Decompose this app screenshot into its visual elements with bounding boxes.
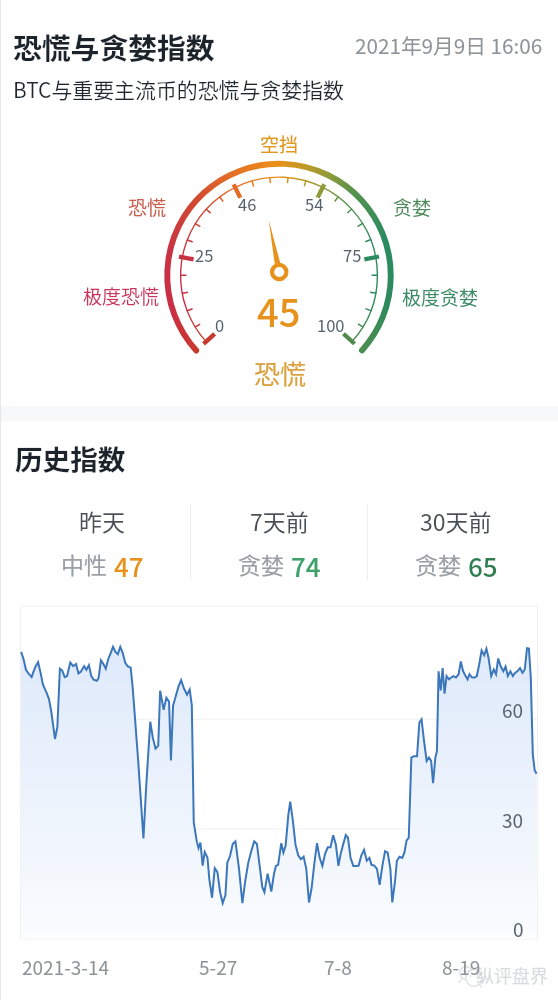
- staticText: 74: [291, 547, 321, 580]
- button[interactable]: 7天前: [191, 504, 367, 580]
- staticText: 昨天: [79, 504, 125, 537]
- staticText: 恐慌: [128, 193, 167, 221]
- button[interactable]: 昨天: [14, 504, 190, 580]
- staticText: 47: [114, 547, 144, 580]
- staticText: 0: [215, 313, 225, 337]
- staticText: BTC与重要主流币的恐慌与贪婪指数: [13, 74, 344, 104]
- staticText: 0: [513, 915, 524, 943]
- staticText: 贪婪: [415, 547, 461, 580]
- staticText: 75: [343, 243, 362, 267]
- staticText: 2021-3-14: [22, 953, 110, 981]
- staticText: 纵评盘界: [476, 962, 548, 988]
- staticText: 60: [502, 696, 524, 724]
- staticText: 7天前: [250, 504, 309, 537]
- button[interactable]: 30天前: [368, 504, 544, 580]
- staticText: 45: [257, 283, 301, 338]
- staticText: 极度贪婪: [402, 283, 479, 311]
- staticText: 8-19: [442, 953, 481, 981]
- staticText: 中性: [61, 547, 107, 580]
- staticText: 恐慌: [254, 354, 307, 392]
- staticText: 54: [305, 192, 324, 216]
- staticText: 30天前: [420, 504, 492, 537]
- staticText: 65: [468, 547, 498, 580]
- staticText: 极度恐慌: [83, 282, 160, 310]
- staticText: 2021年9月9日 16:06: [355, 30, 543, 60]
- staticText: 30: [502, 806, 524, 834]
- staticText: 5-27: [199, 953, 238, 981]
- staticText: 100: [317, 313, 345, 337]
- staticText: 恐慌与贪婪指数: [13, 26, 215, 68]
- staticText: 贪婪: [393, 193, 432, 221]
- staticText: 46: [238, 192, 257, 216]
- staticText: 25: [195, 243, 214, 267]
- staticText: 历史指数: [15, 438, 126, 478]
- staticText: 7-8: [324, 953, 352, 981]
- staticText: 贪婪: [238, 547, 284, 580]
- staticText: 空挡: [260, 130, 299, 158]
